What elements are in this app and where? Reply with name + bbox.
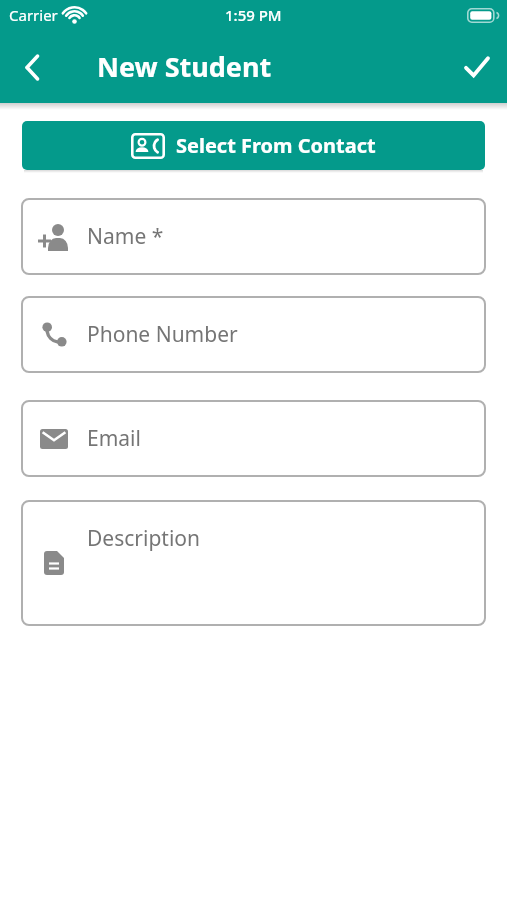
staticText: Description [87, 524, 201, 553]
button[interactable] [14, 49, 50, 85]
staticText: Name * [87, 222, 164, 251]
button[interactable]: Phone Number [21, 296, 486, 373]
staticText: Email [87, 424, 141, 453]
staticText: Select From Contact [176, 132, 376, 159]
button[interactable]: Email [21, 400, 486, 477]
button[interactable] [459, 49, 495, 85]
staticText: New Student [97, 48, 272, 85]
staticText: Phone Number [87, 320, 238, 349]
staticText: 1:59 PM [225, 5, 282, 25]
button[interactable]: Description [21, 500, 486, 626]
staticText: Carrier [9, 5, 58, 25]
button[interactable]: Name * [21, 198, 486, 275]
button[interactable]: Select From Contact [22, 121, 485, 170]
